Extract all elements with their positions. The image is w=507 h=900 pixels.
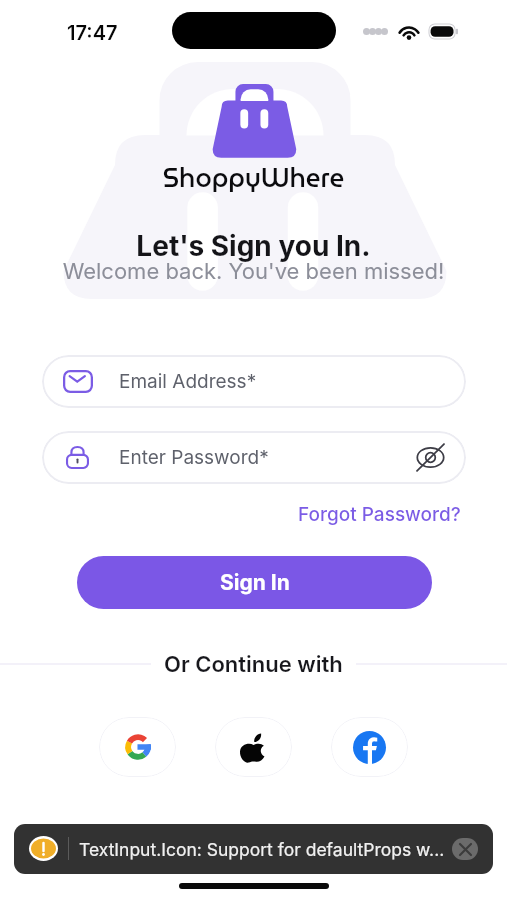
staticText: Let's Sign you In. (0, 229, 507, 263)
staticText: 17:47 (67, 21, 118, 45)
staticText: Enter Password* (119, 446, 269, 469)
button[interactable]: Dismiss (452, 838, 478, 860)
staticText: Or Continue with (164, 651, 343, 678)
button[interactable]: Continue with Apple (215, 717, 292, 777)
staticText: ShoppyWhere (0, 157, 507, 198)
button[interactable]: Continue with Facebook (331, 717, 408, 777)
button[interactable]: Sign In (77, 556, 432, 609)
staticText: TextInput.Icon: Support for defaultProps… (79, 839, 445, 860)
staticText: Email Address* (119, 370, 257, 393)
staticText: Sign In (220, 570, 290, 595)
button[interactable]: Forgot Password? (296, 501, 463, 528)
button[interactable]: Email Address* (42, 355, 466, 408)
other: Show password (416, 443, 445, 472)
staticText: Welcome back. You've been missed! (0, 258, 507, 285)
button[interactable]: Enter Password* (42, 431, 466, 484)
button[interactable]: Continue with Google (99, 717, 176, 777)
staticText: Forgot Password? (298, 503, 461, 526)
